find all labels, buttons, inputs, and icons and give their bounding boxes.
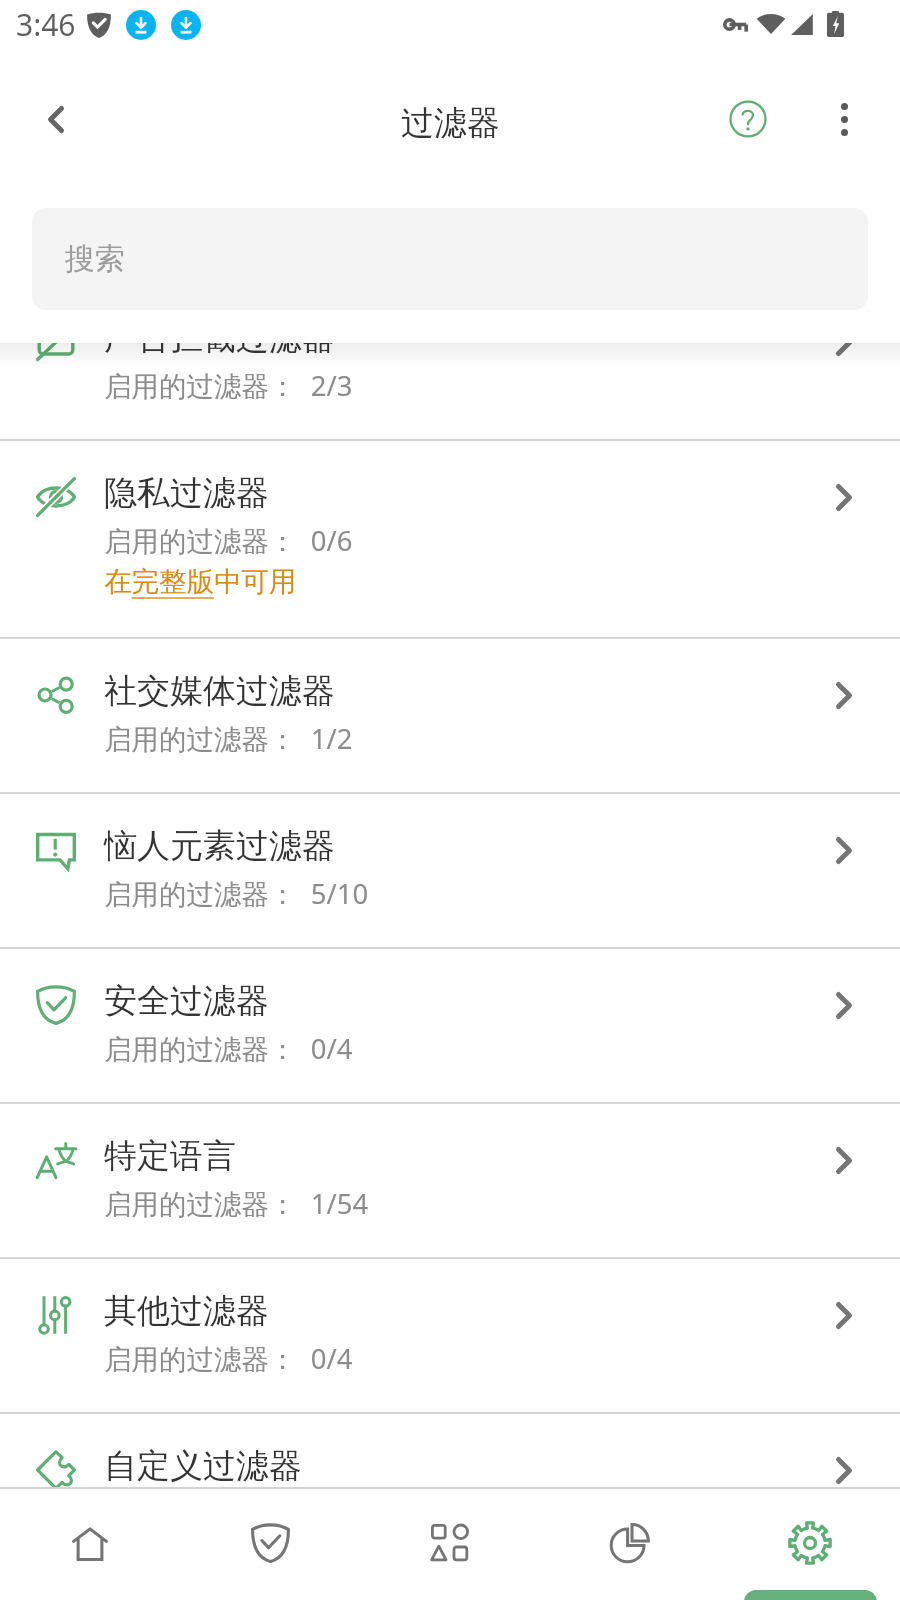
button[interactable]: Home bbox=[10, 1487, 170, 1600]
button[interactable]: 特定语言 bbox=[0, 1104, 900, 1259]
staticText: 启用的过滤器： 1/2 bbox=[104, 720, 353, 758]
staticText: 启用的过滤器： 0/4 bbox=[104, 1030, 353, 1068]
button[interactable]: Help bbox=[712, 83, 784, 155]
staticText: 特定语言 bbox=[104, 1135, 236, 1177]
staticText: 恼人元素过滤器 bbox=[104, 825, 335, 867]
button[interactable]: More options bbox=[808, 83, 880, 155]
button[interactable]: Protection bbox=[190, 1487, 350, 1600]
staticText: 安全过滤器 bbox=[104, 980, 269, 1022]
button[interactable]: Back bbox=[22, 85, 90, 153]
button[interactable]: 其他过滤器 bbox=[0, 1259, 900, 1414]
staticText: 其他过滤器 bbox=[104, 1290, 269, 1332]
staticText: 启用的过滤器： 0/4 bbox=[104, 1340, 353, 1378]
staticText: 启用的过滤器： 1/54 bbox=[104, 1185, 369, 1223]
button[interactable]: 广告拦截过滤器 bbox=[0, 343, 900, 441]
button[interactable]: 隐私过滤器 bbox=[0, 441, 900, 639]
staticText: 广告拦截过滤器 bbox=[104, 343, 335, 359]
staticText: 启用的过滤器： 2/3 bbox=[104, 367, 353, 405]
staticText: 社交媒体过滤器 bbox=[104, 670, 335, 712]
button[interactable]: 恼人元素过滤器 bbox=[0, 794, 900, 949]
button[interactable]: 安全过滤器 bbox=[0, 949, 900, 1104]
button[interactable]: Settings bbox=[730, 1487, 890, 1600]
staticText: 过滤器 bbox=[401, 102, 500, 144]
staticText: 在完整版中可用 bbox=[104, 565, 297, 600]
staticText: 启用的过滤器： 0/6 bbox=[104, 522, 353, 560]
button[interactable]: Statistics bbox=[550, 1487, 710, 1600]
staticText: 自定义过滤器 bbox=[104, 1445, 302, 1487]
staticText: 搜索 bbox=[65, 240, 125, 278]
staticText: 启用的过滤器： 5/10 bbox=[104, 875, 369, 913]
button[interactable]: 搜索 bbox=[32, 208, 868, 310]
button[interactable]: Apps bbox=[370, 1487, 530, 1600]
staticText: 隐私过滤器 bbox=[104, 472, 269, 514]
button[interactable]: 自定义过滤器 bbox=[0, 1414, 900, 1487]
staticText: 3:46 bbox=[16, 4, 76, 45]
button[interactable]: 社交媒体过滤器 bbox=[0, 639, 900, 794]
